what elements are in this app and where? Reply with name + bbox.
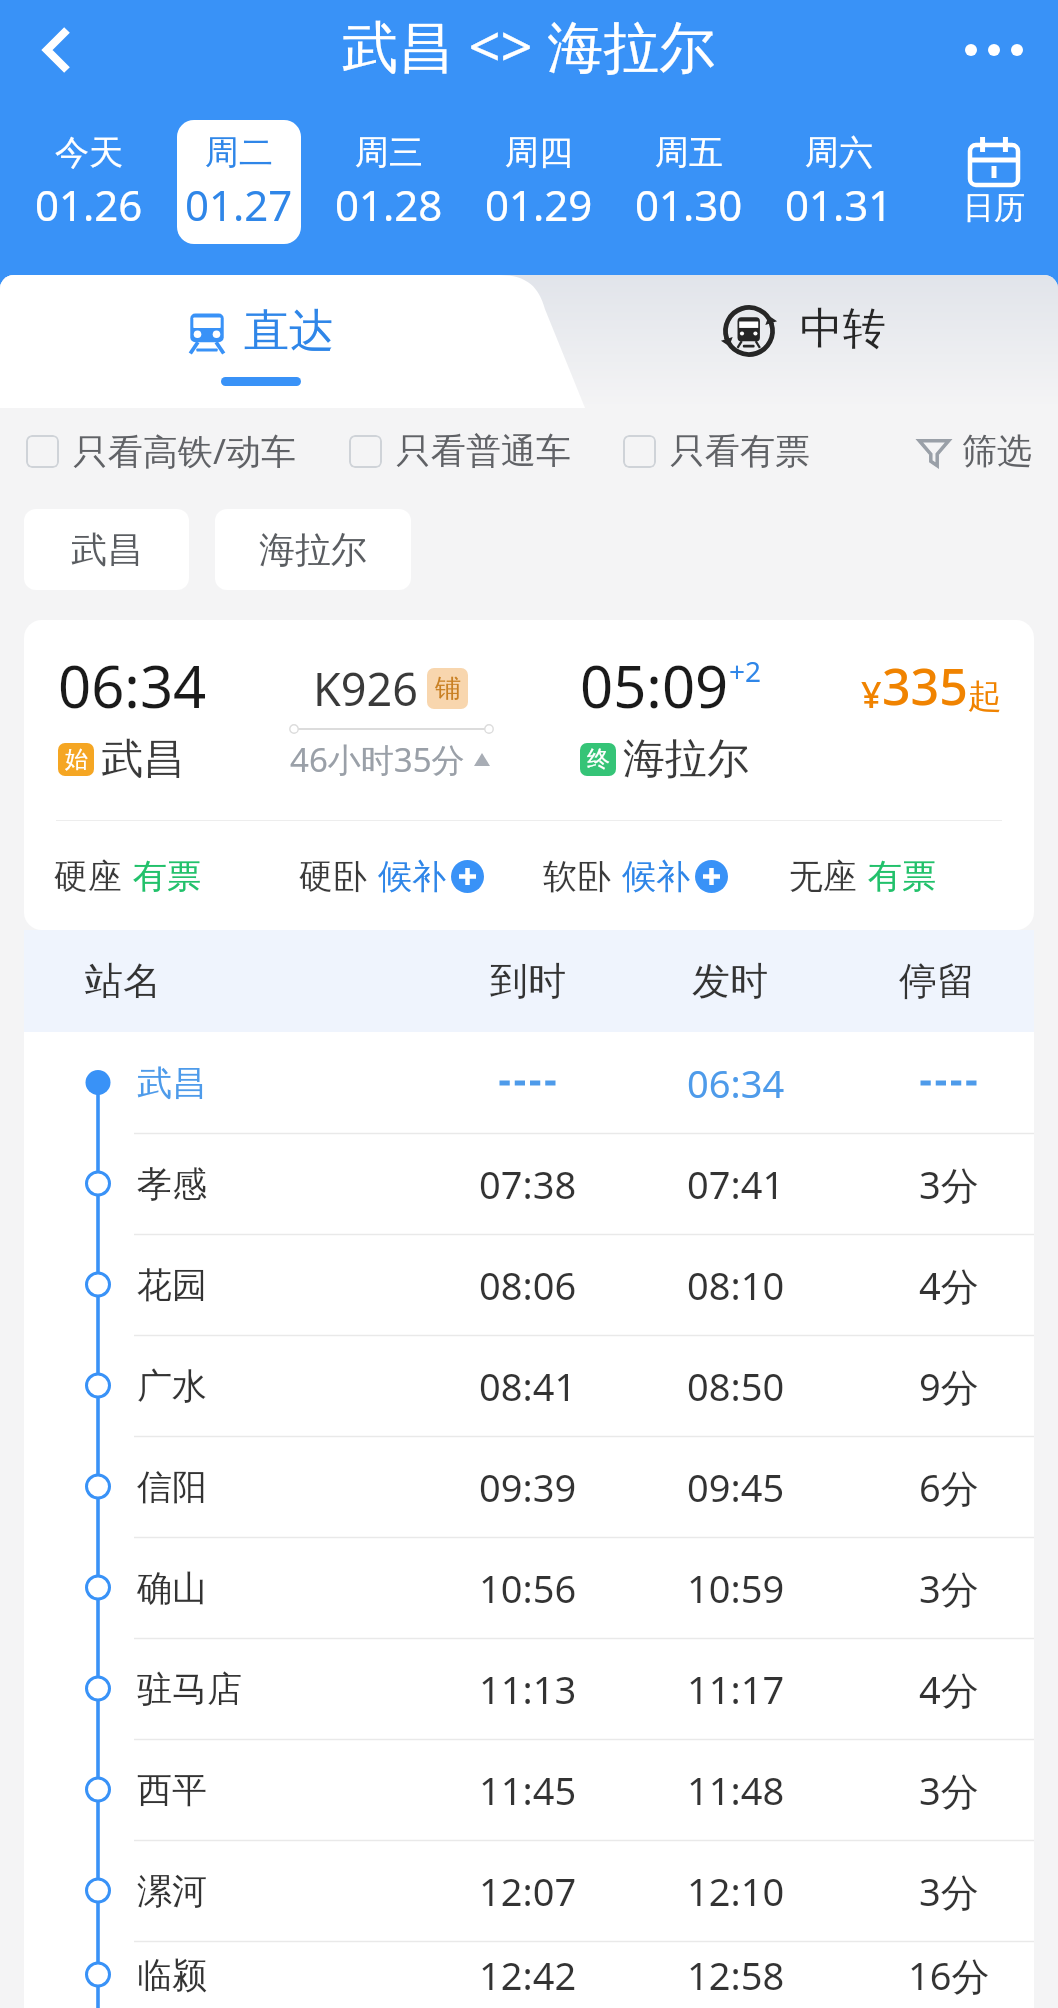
button[interactable]: 临颍 (24, 1941, 1034, 2008)
button[interactable]: 周四 (477, 120, 601, 244)
staticText: 漯河 (137, 1869, 207, 1913)
staticText: 3分 (919, 1865, 979, 1917)
staticText: 铺 (435, 672, 461, 705)
button[interactable]: 广水 (24, 1335, 1034, 1436)
staticText: 武昌 (137, 1061, 207, 1105)
staticText: 停留 (899, 957, 975, 1005)
staticText: 无座 (789, 855, 857, 898)
button[interactable]: 无座 (789, 846, 936, 906)
button[interactable]: 只看有票 (623, 429, 810, 473)
staticText: 有票 (868, 855, 936, 898)
button[interactable]: 孝感 (24, 1133, 1034, 1234)
staticText: 4分 (919, 1259, 979, 1311)
staticText: ¥ (861, 670, 882, 719)
staticText: 发时 (692, 957, 768, 1005)
staticText: 3分 (919, 1764, 979, 1816)
staticText: 硬卧 (299, 855, 367, 898)
button[interactable]: 周三 (327, 120, 451, 244)
button[interactable]: 确山 (24, 1537, 1034, 1638)
staticText: 今天 (55, 131, 123, 174)
button[interactable]: 筛选 (918, 429, 1032, 473)
staticText: 筛选 (962, 429, 1032, 473)
staticText: 确山 (137, 1566, 207, 1610)
staticText: 只看普通车 (396, 429, 571, 473)
button[interactable]: 中转 (721, 275, 951, 408)
staticText: 广水 (137, 1364, 207, 1408)
button[interactable]: More options (939, 0, 1049, 100)
staticText: K926 (313, 658, 419, 719)
button[interactable]: 武昌 (24, 1032, 1034, 1133)
staticText: 01.28 (335, 176, 443, 233)
staticText: 周五 (655, 131, 723, 174)
button[interactable]: 只看普通车 (349, 429, 571, 473)
button[interactable]: Calendar (930, 120, 1058, 244)
staticText: 07:38 (479, 1158, 577, 1210)
button[interactable]: 硬卧 (299, 846, 484, 906)
staticText: 11:13 (479, 1663, 577, 1715)
button[interactable]: 花园 (24, 1234, 1034, 1335)
button[interactable]: 驻马店 (24, 1638, 1034, 1739)
staticText: 周二 (205, 131, 273, 174)
staticText: 中转 (800, 302, 886, 356)
staticText: 始 (65, 745, 88, 774)
staticText: 12:07 (479, 1865, 577, 1917)
staticText: 3分 (919, 1158, 979, 1210)
staticText: 站名 (85, 957, 161, 1005)
staticText: 日历 (963, 188, 1025, 227)
staticText: 06:34 (687, 1057, 785, 1109)
staticText: 11:17 (687, 1663, 785, 1715)
staticText: 只看高铁/动车 (73, 427, 297, 475)
button[interactable]: 软卧 (543, 846, 728, 906)
staticText: 起 (968, 675, 1002, 718)
staticText: 候补 (378, 855, 446, 898)
staticText: 候补 (622, 855, 690, 898)
button[interactable]: 信阳 (24, 1436, 1034, 1537)
button[interactable]: 硬座 (54, 846, 201, 906)
button[interactable]: 海拉尔 (215, 509, 411, 590)
staticText: 10:56 (479, 1562, 577, 1614)
button[interactable]: 今天 (27, 120, 151, 244)
button[interactable]: 武昌 (24, 509, 189, 590)
staticText: 11:48 (687, 1764, 785, 1816)
staticText: 12:42 (479, 1949, 577, 2001)
staticText: 46小时35分 (290, 737, 465, 782)
staticText: 01.27 (185, 176, 293, 233)
staticText: 软卧 (543, 855, 611, 898)
staticText: 09:39 (479, 1461, 577, 1513)
staticText: 08:50 (687, 1360, 785, 1412)
staticText: 08:41 (479, 1360, 577, 1412)
staticText: 05:09 (580, 646, 729, 725)
button[interactable]: 06:34 (24, 620, 1034, 930)
staticText: 12:10 (687, 1865, 785, 1917)
staticText: 有票 (133, 855, 201, 898)
staticText: 临颍 (137, 1953, 207, 1997)
staticText: 武昌 (71, 527, 143, 572)
staticText: 01.30 (635, 176, 743, 233)
staticText: 9分 (919, 1360, 979, 1412)
staticText: 06:34 (58, 646, 207, 725)
staticText: 12:58 (687, 1949, 785, 2001)
button[interactable]: 周二 (177, 120, 301, 244)
staticText: 01.26 (35, 176, 143, 233)
button[interactable]: 周五 (627, 120, 751, 244)
staticText: 10:59 (687, 1562, 785, 1614)
button[interactable]: 西平 (24, 1739, 1034, 1840)
staticText: 驻马店 (137, 1667, 242, 1711)
button[interactable]: 漯河 (24, 1840, 1034, 1941)
staticText: 01.29 (485, 176, 593, 233)
staticText: 武昌 (101, 733, 185, 786)
button[interactable]: 直达 (0, 275, 545, 408)
staticText: 01.31 (785, 176, 893, 233)
staticText: 07:41 (687, 1158, 785, 1210)
staticText: 硬座 (54, 855, 122, 898)
staticText: 周六 (805, 131, 873, 174)
staticText: +2 (729, 652, 762, 690)
button[interactable]: 周六 (777, 120, 901, 244)
button[interactable]: Back (4, 0, 108, 100)
button[interactable]: 只看高铁/动车 (26, 427, 297, 475)
staticText: 11:45 (479, 1764, 577, 1816)
staticText: 孝感 (137, 1162, 207, 1206)
staticText: 海拉尔 (623, 733, 749, 786)
staticText: 终 (587, 745, 610, 774)
staticText: 3分 (919, 1562, 979, 1614)
